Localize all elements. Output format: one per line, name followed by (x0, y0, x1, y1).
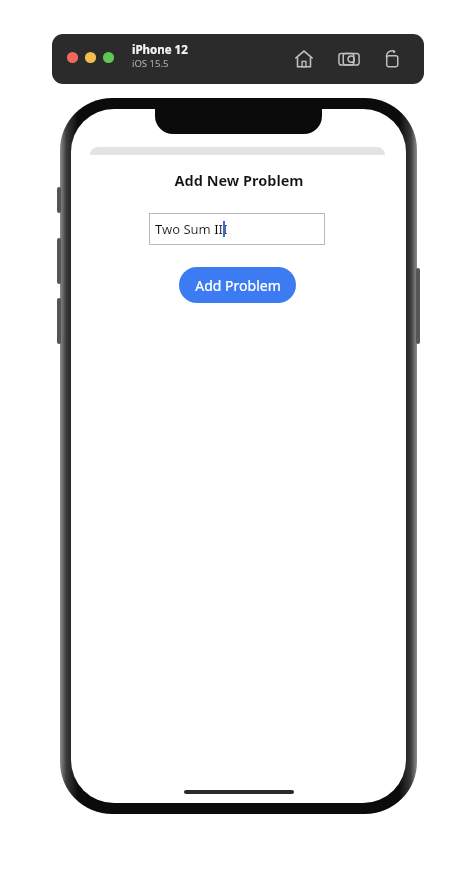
button[interactable]: Screenshot (337, 47, 361, 71)
button[interactable]: Rotate (380, 47, 404, 71)
staticText: Add New Problem (174, 170, 304, 190)
button[interactable]: Two Sum III (149, 213, 325, 245)
button[interactable]: Home (292, 47, 316, 71)
staticText: Two Sum III (155, 220, 228, 238)
button[interactable]: Add Problem (179, 267, 296, 303)
staticText: iOS 15.5 (132, 57, 169, 70)
staticText: iPhone 12 (132, 42, 188, 58)
staticText: Add Problem (195, 276, 281, 295)
